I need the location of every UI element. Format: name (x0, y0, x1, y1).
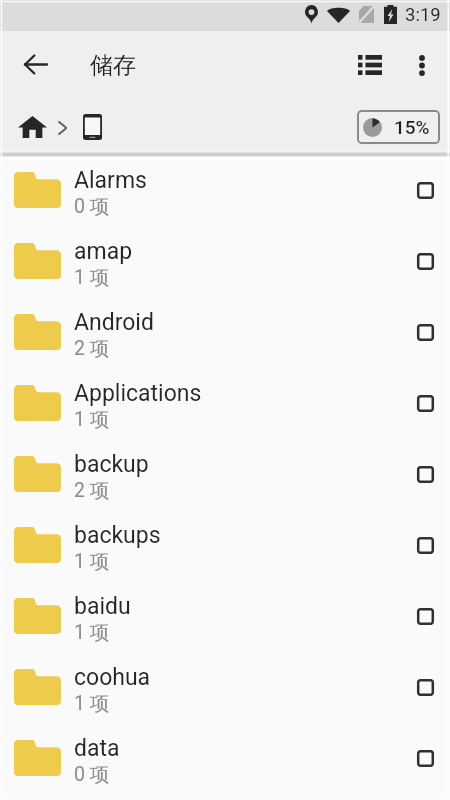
button[interactable]: Back (11, 40, 59, 88)
button[interactable]: data (0, 723, 450, 794)
button[interactable]: Select amap (403, 239, 448, 284)
button[interactable]: Internal storage (74, 109, 110, 145)
staticText: backup (74, 451, 149, 478)
button[interactable]: baidu (0, 581, 450, 652)
button[interactable]: backups (0, 510, 450, 581)
staticText: 1 项 (74, 407, 110, 432)
button[interactable]: Select Alarms (403, 168, 448, 213)
staticText: 0 项 (74, 194, 110, 219)
staticText: Alarms (74, 167, 147, 194)
staticText: backups (74, 522, 161, 549)
staticText: amap (74, 238, 133, 265)
button[interactable]: Select Android (403, 310, 448, 355)
button[interactable]: Select coohua (403, 665, 448, 710)
staticText: 15% (394, 116, 430, 138)
button[interactable]: Select backups (403, 523, 448, 568)
button[interactable]: Select baidu (403, 594, 448, 639)
button[interactable]: Select Applications (403, 381, 448, 426)
button[interactable]: View as list (346, 41, 394, 89)
staticText: coohua (74, 664, 151, 691)
staticText: Applications (74, 380, 202, 407)
button[interactable]: More options (398, 41, 446, 89)
staticText: 2 项 (74, 336, 110, 361)
button[interactable]: backup (0, 439, 450, 510)
button[interactable]: amap (0, 226, 450, 297)
staticText: Android (74, 309, 154, 336)
staticText: 储存 (90, 51, 136, 80)
button[interactable]: Select backup (403, 452, 448, 497)
button[interactable]: Select data (403, 736, 448, 781)
staticText: 1 项 (74, 620, 110, 645)
staticText: 1 项 (74, 691, 110, 716)
staticText: 3:19 (405, 4, 441, 26)
staticText: 1 项 (74, 265, 110, 290)
staticText: data (74, 735, 120, 762)
staticText: 0 项 (74, 762, 110, 787)
button[interactable]: coohua (0, 652, 450, 723)
staticText: baidu (74, 593, 131, 620)
staticText: 1 项 (74, 549, 110, 574)
button[interactable]: Home (14, 109, 50, 145)
staticText: 2 项 (74, 478, 110, 503)
button[interactable]: Android (0, 297, 450, 368)
button[interactable]: 15% (357, 110, 440, 144)
button[interactable]: Applications (0, 368, 450, 439)
button[interactable]: Alarms (0, 155, 450, 226)
